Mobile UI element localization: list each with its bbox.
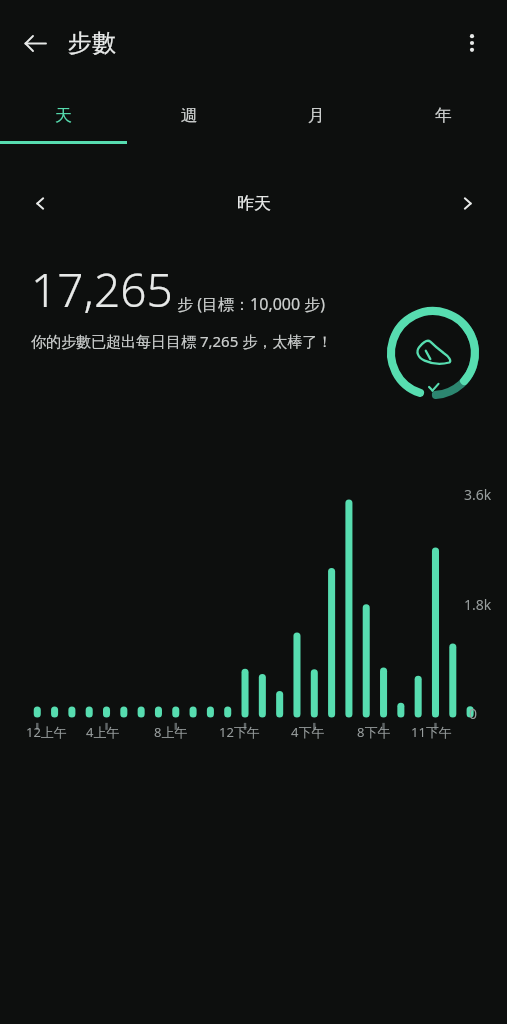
staticText: 昨天	[237, 193, 271, 214]
staticText: 4上午	[86, 723, 120, 741]
staticText: 17,265	[31, 258, 173, 321]
button[interactable]: 週	[126, 86, 253, 144]
button[interactable]: Back	[12, 20, 58, 66]
button[interactable]: Next day	[447, 183, 487, 223]
staticText: 8下午	[357, 723, 391, 741]
staticText: 年	[435, 105, 452, 126]
staticText: 0	[469, 704, 478, 723]
staticText: 8上午	[154, 723, 188, 741]
button[interactable]: Previous day	[20, 183, 60, 223]
staticText: 週	[181, 105, 198, 126]
button[interactable]: More options	[449, 20, 495, 66]
staticText: 月	[308, 105, 325, 126]
staticText: 12上午	[26, 723, 67, 741]
staticText: 4下午	[291, 723, 325, 741]
staticText: 天	[55, 105, 72, 126]
staticText: 3.6k	[464, 485, 492, 504]
button[interactable]: 月	[253, 86, 380, 144]
button[interactable]: 年	[380, 86, 507, 144]
staticText: 1.8k	[464, 595, 492, 614]
staticText: 12下午	[219, 723, 260, 741]
button[interactable]: 天	[0, 86, 126, 144]
staticText: 你的步數已超出每日目標 7,265 步，太棒了！	[31, 331, 333, 351]
button[interactable]: Daily step goal achieved	[387, 307, 479, 399]
staticText: 11下午	[411, 723, 452, 741]
staticText: 步數	[68, 28, 116, 58]
staticText: 步 (目標：10,000 步)	[173, 293, 326, 315]
